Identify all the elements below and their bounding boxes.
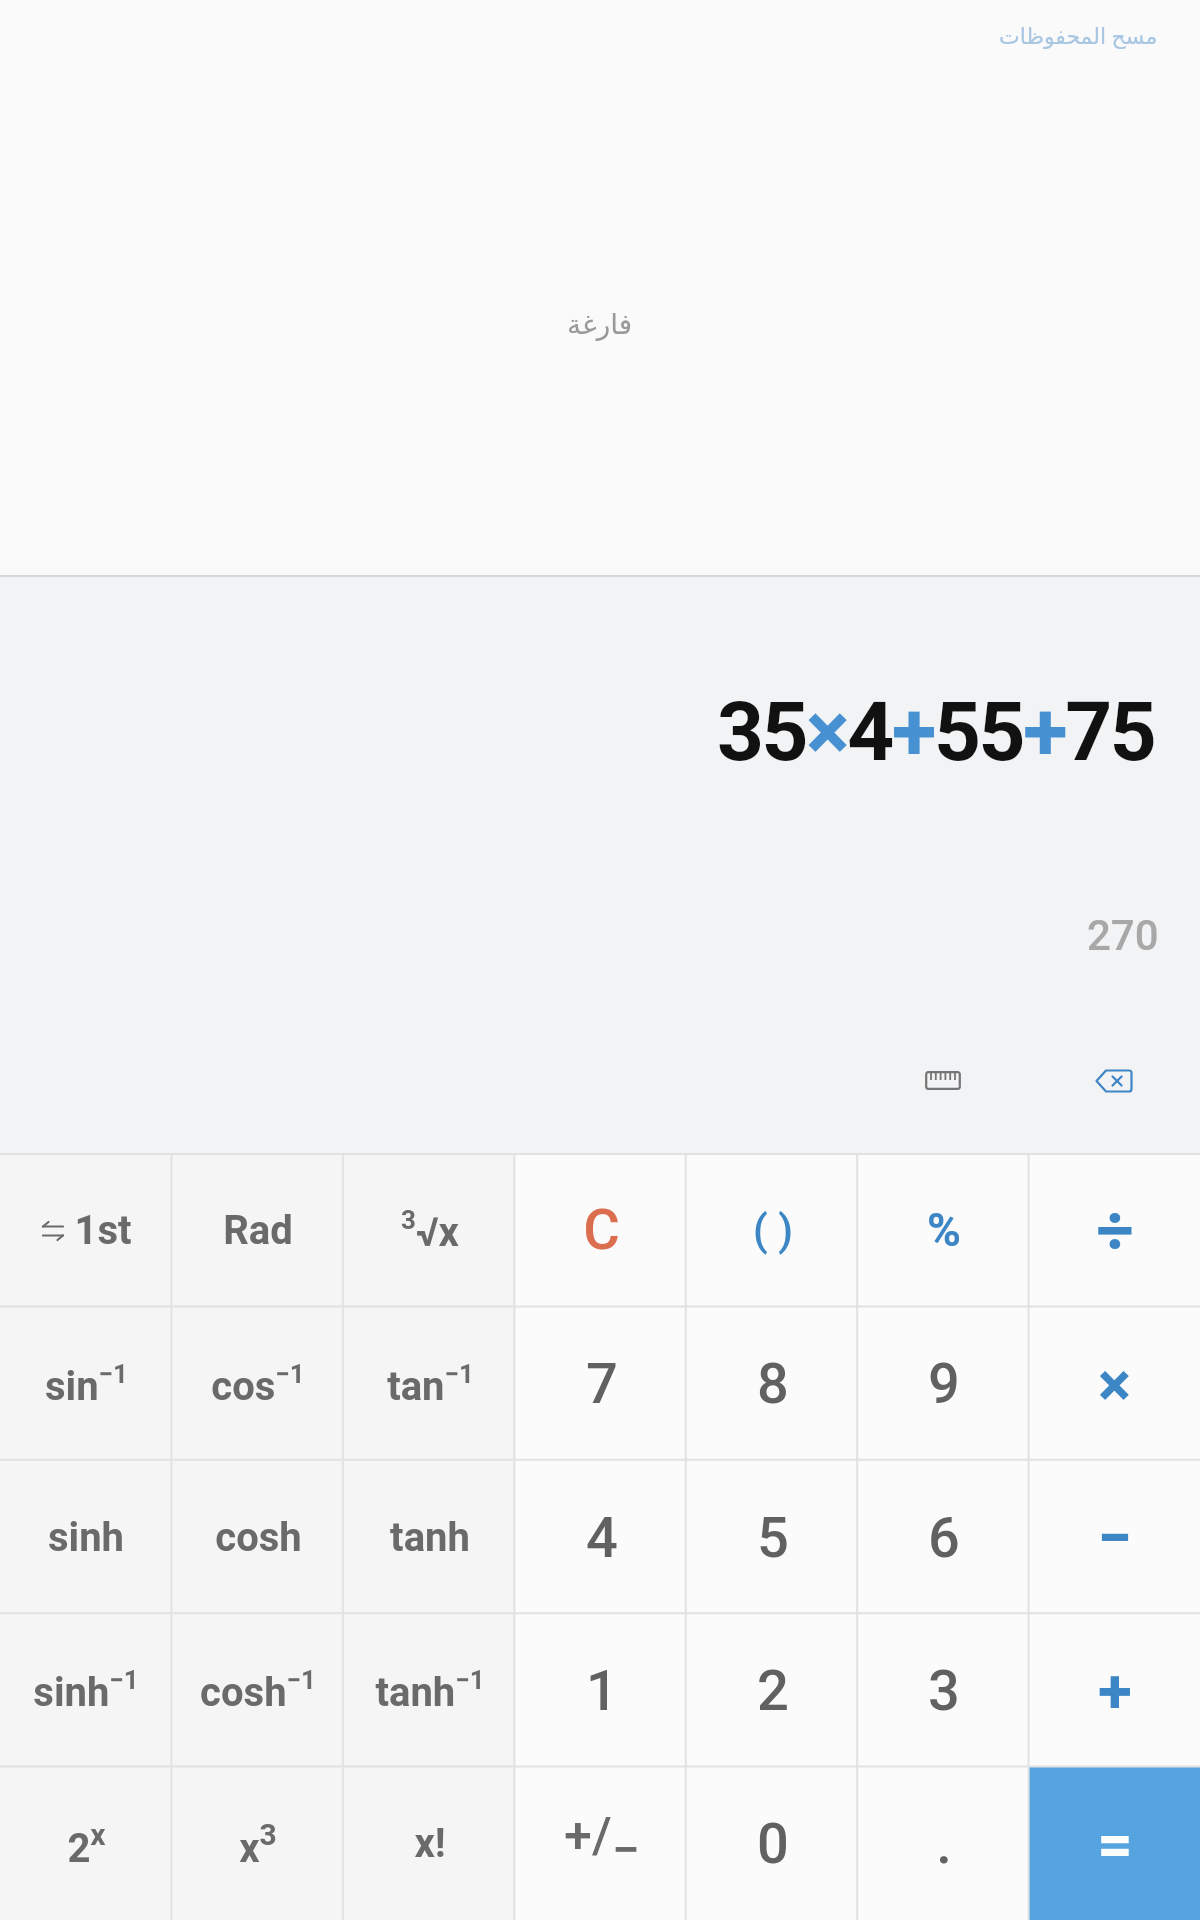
button[interactable]: . bbox=[858, 1767, 1029, 1920]
staticText: 1 bbox=[586, 1658, 618, 1724]
staticText: x! bbox=[414, 1820, 446, 1867]
staticText: 2 bbox=[757, 1658, 789, 1724]
staticText: فارغة bbox=[567, 308, 633, 341]
button[interactable]: − bbox=[1029, 1461, 1200, 1614]
staticText: % bbox=[927, 1203, 961, 1257]
staticText: مسح المحفوظات bbox=[999, 24, 1158, 50]
button[interactable]: 4 bbox=[516, 1461, 687, 1614]
staticText: × bbox=[1098, 1348, 1131, 1421]
staticText: cos−1 bbox=[211, 1359, 305, 1410]
button[interactable]: 2x bbox=[0, 1767, 172, 1920]
button[interactable]: sinh−1 bbox=[0, 1614, 172, 1767]
staticText: + bbox=[1098, 1654, 1132, 1727]
button[interactable]: sinh bbox=[0, 1461, 172, 1614]
staticText: 2x bbox=[67, 1817, 106, 1871]
staticText: 9 bbox=[928, 1351, 960, 1417]
staticText: ÷ bbox=[1096, 1192, 1134, 1269]
button[interactable]: Rad bbox=[172, 1153, 344, 1307]
staticText: = bbox=[1097, 1807, 1133, 1880]
button[interactable]: 1st bbox=[0, 1153, 172, 1307]
staticText: sinh bbox=[48, 1514, 124, 1561]
staticText: . bbox=[936, 1811, 952, 1877]
staticText: x3 bbox=[239, 1817, 277, 1871]
button[interactable]: 6 bbox=[858, 1461, 1029, 1614]
button[interactable]: × bbox=[1029, 1307, 1200, 1461]
staticText: ( ) bbox=[753, 1206, 793, 1255]
button[interactable]: tanh−1 bbox=[344, 1614, 516, 1767]
staticText: 7 bbox=[586, 1351, 618, 1417]
staticText: − bbox=[1097, 1501, 1132, 1574]
button[interactable] bbox=[1095, 1069, 1133, 1093]
button[interactable]: 3√x bbox=[344, 1153, 516, 1307]
button[interactable]: x! bbox=[344, 1767, 516, 1920]
staticText: tan−1 bbox=[387, 1359, 474, 1410]
staticText: 3√x bbox=[401, 1205, 459, 1256]
button[interactable]: 1 bbox=[516, 1614, 687, 1767]
button[interactable]: ÷ bbox=[1029, 1153, 1200, 1307]
staticText: Rad bbox=[223, 1207, 293, 1254]
staticText: 5 bbox=[757, 1505, 789, 1571]
button[interactable]: cos−1 bbox=[172, 1307, 344, 1461]
staticText: 6 bbox=[928, 1505, 960, 1571]
button[interactable]: مسح المحفوظات bbox=[999, 24, 1158, 50]
staticText: 35×4+55+75 bbox=[717, 684, 1155, 780]
button[interactable]: 5 bbox=[687, 1461, 858, 1614]
button[interactable]: = bbox=[1029, 1767, 1200, 1920]
staticText: tanh bbox=[390, 1514, 470, 1561]
button[interactable]: cosh bbox=[172, 1461, 344, 1614]
button[interactable]: cosh−1 bbox=[172, 1614, 344, 1767]
button[interactable] bbox=[925, 1071, 961, 1090]
button[interactable]: tan−1 bbox=[344, 1307, 516, 1461]
button[interactable]: x3 bbox=[172, 1767, 344, 1920]
button[interactable]: 9 bbox=[858, 1307, 1029, 1461]
button[interactable]: tanh bbox=[344, 1461, 516, 1614]
button[interactable]: ( ) bbox=[687, 1153, 858, 1307]
button[interactable]: % bbox=[858, 1153, 1029, 1307]
button[interactable]: sin−1 bbox=[0, 1307, 172, 1461]
button[interactable]: 3 bbox=[858, 1614, 1029, 1767]
staticText: sinh−1 bbox=[33, 1665, 139, 1716]
button[interactable]: 8 bbox=[687, 1307, 858, 1461]
staticText: 0 bbox=[757, 1811, 789, 1877]
staticText: 4 bbox=[586, 1505, 618, 1571]
button[interactable]: C bbox=[516, 1153, 687, 1307]
staticText: sin−1 bbox=[45, 1359, 128, 1410]
button[interactable]: 0 bbox=[687, 1767, 858, 1920]
staticText: +/− bbox=[564, 1807, 640, 1880]
staticText: tanh−1 bbox=[375, 1665, 485, 1716]
button[interactable]: 2 bbox=[687, 1614, 858, 1767]
staticText: 3 bbox=[928, 1658, 960, 1724]
staticText: C bbox=[583, 1197, 620, 1263]
button[interactable]: +/− bbox=[516, 1767, 687, 1920]
staticText: cosh bbox=[215, 1514, 302, 1561]
staticText: 1st bbox=[74, 1207, 132, 1254]
staticText: cosh−1 bbox=[200, 1665, 316, 1716]
button[interactable]: + bbox=[1029, 1614, 1200, 1767]
staticText: 8 bbox=[757, 1351, 789, 1417]
staticText: 270 bbox=[1087, 911, 1159, 960]
button[interactable]: 7 bbox=[516, 1307, 687, 1461]
